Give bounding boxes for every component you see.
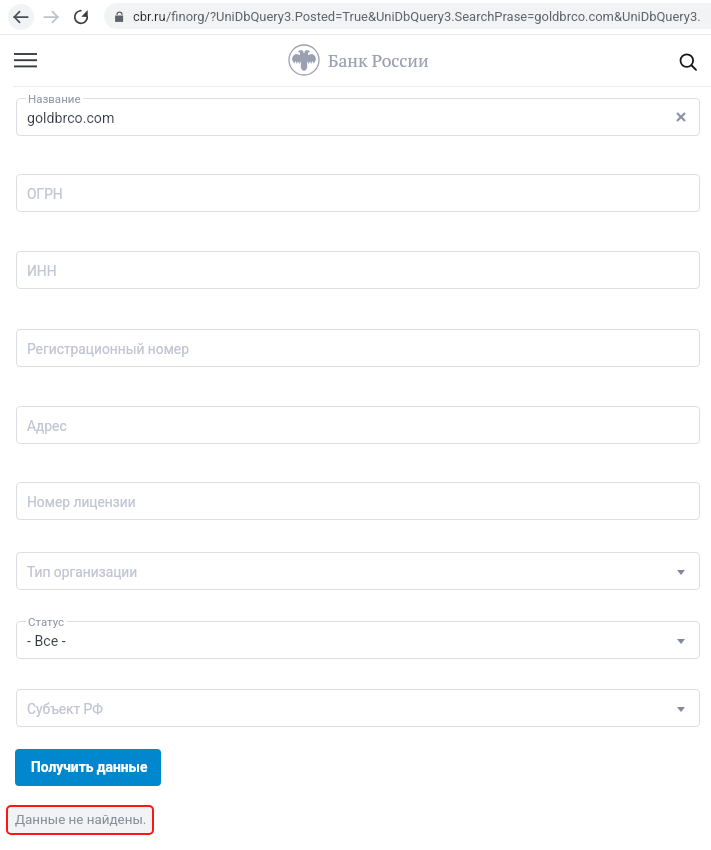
staticText: Статус (28, 615, 65, 628)
staticText: Регистрационный номер (27, 341, 189, 357)
staticText: cbr.ru (133, 9, 166, 24)
button[interactable] (16, 689, 700, 727)
button[interactable] (16, 406, 700, 444)
button[interactable] (16, 552, 700, 590)
button[interactable] (16, 174, 700, 212)
staticText: Данные не найдены. (15, 812, 147, 828)
button[interactable] (16, 251, 700, 289)
staticText: ОГРН (27, 186, 63, 202)
staticText: goldbrco.com (27, 110, 115, 127)
button[interactable]: cbr.ru (104, 3, 711, 29)
staticText: Банк России (328, 49, 429, 72)
button[interactable]: Reload (68, 4, 94, 30)
staticText: Адрес (27, 418, 67, 434)
button[interactable] (16, 621, 700, 659)
staticText: Номер лицензии (27, 494, 136, 510)
staticText: ИНН (27, 263, 57, 279)
staticText: Субъект РФ (27, 701, 103, 717)
staticText: Тип организации (27, 564, 138, 580)
staticText: /finorg/?UniDbQuery3.Posted=True&UniDbQu… (166, 9, 701, 24)
button[interactable] (16, 482, 700, 520)
button[interactable]: Menu (5, 44, 45, 76)
button[interactable] (16, 329, 700, 367)
button[interactable]: Clear (669, 105, 693, 129)
staticText: - Все - (27, 633, 66, 650)
staticText: Получить данные (31, 759, 148, 775)
button[interactable]: Forward (38, 4, 64, 30)
staticText: Название (28, 92, 81, 105)
button[interactable] (16, 98, 700, 136)
button[interactable]: Search (668, 42, 708, 82)
button[interactable]: Back (8, 4, 34, 30)
button[interactable]: Получить данные (15, 749, 161, 786)
